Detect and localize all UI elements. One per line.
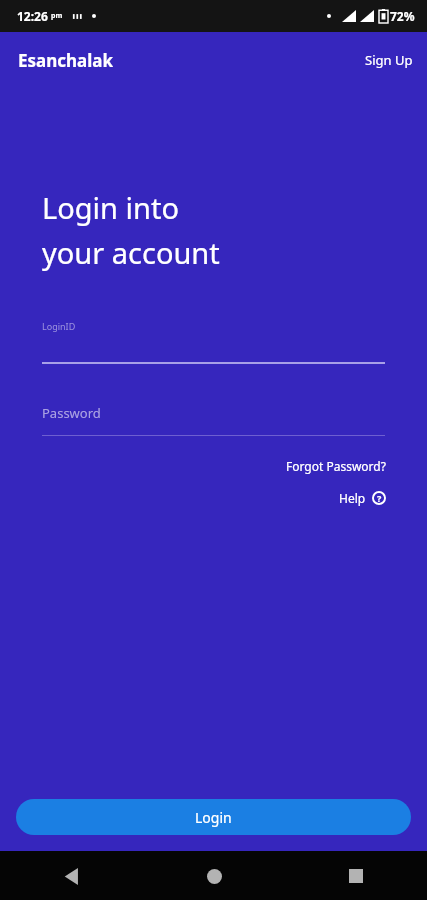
staticText: Esanchalak (18, 49, 114, 72)
button[interactable]: Help (339, 488, 386, 508)
other: Help (372, 491, 386, 505)
staticText: Login into (42, 188, 179, 227)
staticText: ? (377, 492, 382, 504)
button[interactable]: Home (190, 852, 238, 900)
staticText: 12:26 (17, 8, 48, 24)
button[interactable]: LoginID (42, 320, 385, 364)
staticText: Sign Up (365, 51, 413, 69)
staticText: Login (195, 808, 232, 827)
staticText: Password (42, 404, 101, 422)
staticText: Forgot Password? (286, 458, 386, 474)
button[interactable]: Recent apps (332, 852, 380, 900)
button[interactable]: Password (42, 404, 385, 436)
staticText: Help (339, 490, 366, 506)
button[interactable]: Sign Up (351, 41, 427, 79)
staticText: LoginID (42, 320, 76, 332)
button[interactable]: Login (16, 799, 411, 835)
button[interactable]: Forgot Password? (286, 454, 386, 478)
staticText: 72% (390, 8, 415, 24)
staticText: your account (42, 233, 220, 272)
button[interactable]: Back (47, 852, 95, 900)
staticText: pm (51, 11, 63, 21)
